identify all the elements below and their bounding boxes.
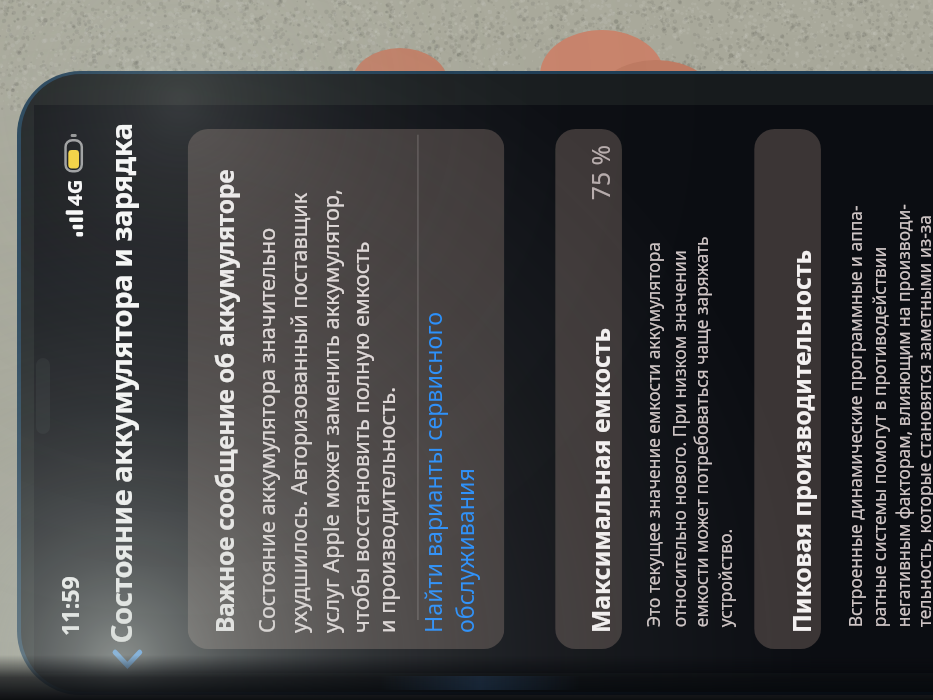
button[interactable]: Найти варианты сервисного bbox=[417, 311, 481, 633]
staticText: обслуживания bbox=[449, 467, 481, 633]
staticText: тельность, которые становятся заметными … bbox=[912, 215, 933, 627]
staticText: Важное сообщение об аккумуляторе bbox=[208, 168, 241, 633]
staticText: емкости может потребоваться чаще заряжат… bbox=[689, 235, 712, 627]
staticText: ухудшилось. Авторизованный поставщик bbox=[284, 191, 313, 633]
staticText: Состояние аккумулятора значительно bbox=[252, 228, 281, 633]
staticText: Найти варианты сервисного bbox=[417, 311, 449, 633]
staticText: Это текущее значение емкости аккумулятор… bbox=[641, 241, 664, 627]
button[interactable]: Пиковая производительность bbox=[754, 129, 821, 649]
staticText: Состояние аккумулятора и зарядка bbox=[102, 123, 141, 643]
staticText: 11:59 bbox=[54, 575, 86, 636]
staticText: и производительность. bbox=[372, 386, 401, 633]
staticText: негативным факторам, влияющим на произво… bbox=[891, 203, 914, 627]
staticText: 75 % bbox=[584, 145, 618, 200]
staticText: Пиковая производительность bbox=[785, 250, 818, 633]
staticText: 4G bbox=[60, 178, 87, 206]
staticText: устройство. bbox=[713, 528, 737, 627]
staticText: ратные системы помогут в противодействии bbox=[867, 245, 891, 627]
button[interactable]: Максимальная емкость bbox=[555, 129, 622, 649]
button[interactable]: Back bbox=[106, 637, 147, 681]
staticText: Встроенные динамические программные и ап… bbox=[843, 204, 866, 627]
staticText: услуг Apple может заменить аккумулятор, bbox=[315, 189, 344, 633]
staticText: Максимальная емкость bbox=[584, 326, 618, 633]
staticText: чтобы восстановить полную емкость bbox=[346, 241, 375, 633]
staticText: относительно нового. При низком значении bbox=[667, 250, 690, 627]
